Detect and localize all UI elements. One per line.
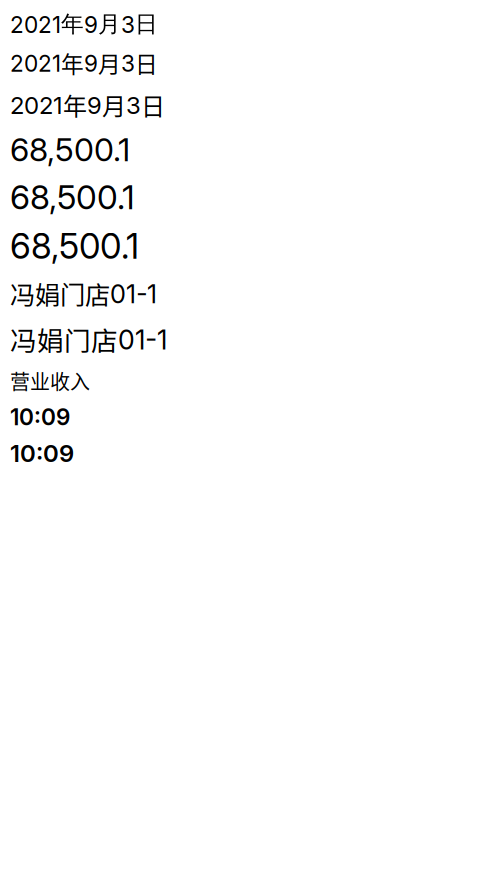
staticText: 2021年9月3日 [10,10,158,39]
staticText: 冯娟门店01-1 [10,320,167,358]
staticText: 2021年9月3日 [10,47,158,79]
staticText: 营业收入 [10,366,90,395]
staticText: 冯娟门店01-1 [10,275,157,312]
staticText: 68,500.1 [10,130,130,169]
staticText: 10:09 [10,403,70,431]
staticText: 2021年9月3日 [10,87,165,122]
staticText: 68,500.1 [10,177,135,217]
staticText: 68,500.1 [10,225,139,267]
staticText: 10:09 [10,439,74,468]
